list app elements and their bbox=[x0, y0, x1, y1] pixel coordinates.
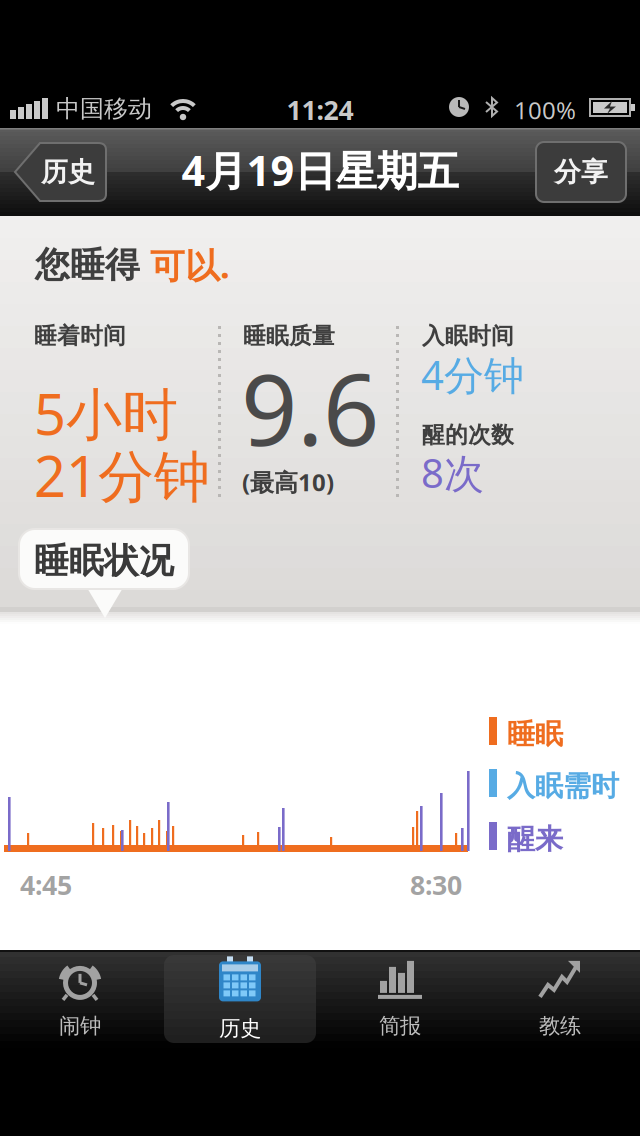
button[interactable]: 睡眠状况 bbox=[18, 528, 190, 618]
staticText: 醒的次数 bbox=[422, 421, 514, 449]
staticText: 100% bbox=[514, 94, 576, 126]
staticText: 闹钟 bbox=[59, 1013, 101, 1039]
staticText: 睡眠质量 bbox=[243, 322, 335, 350]
staticText: 入眠需时 bbox=[507, 769, 619, 803]
staticText: 醒来 bbox=[507, 822, 563, 856]
staticText: 中国移动 bbox=[56, 94, 152, 123]
staticText: 5小时 bbox=[34, 376, 178, 450]
button[interactable]: 历史 bbox=[14, 142, 106, 202]
staticText: 11:24 bbox=[286, 92, 353, 127]
staticText: 睡眠状况 bbox=[34, 540, 174, 582]
staticText: 历史 bbox=[41, 156, 95, 188]
staticText: (最高10) bbox=[242, 466, 334, 498]
button[interactable]: 分享 bbox=[536, 142, 626, 202]
staticText: 4:45 bbox=[20, 867, 72, 902]
button[interactable]: 简报 bbox=[324, 955, 476, 1043]
staticText: 可以. bbox=[140, 242, 230, 288]
staticText: 睡眠 bbox=[507, 717, 563, 751]
button[interactable]: 历史 bbox=[164, 955, 316, 1043]
staticText: 8:30 bbox=[410, 867, 462, 902]
button[interactable]: 闹钟 bbox=[4, 955, 156, 1043]
staticText: 9.6 bbox=[241, 342, 379, 473]
staticText: 21分钟 bbox=[34, 438, 210, 512]
staticText: 8次 bbox=[421, 446, 484, 499]
staticText: 您睡得 bbox=[35, 244, 140, 286]
button[interactable]: 教练 bbox=[484, 955, 636, 1043]
staticText: 教练 bbox=[539, 1013, 581, 1039]
staticText: 4月19日星期五 bbox=[181, 143, 458, 197]
staticText: 入眠时间 bbox=[422, 322, 514, 350]
staticText: 睡着时间 bbox=[34, 322, 126, 350]
staticText: 分享 bbox=[554, 156, 608, 188]
staticText: 4分钟 bbox=[421, 348, 524, 401]
staticText: 历史 bbox=[219, 1015, 261, 1042]
staticText: 简报 bbox=[379, 1013, 421, 1039]
